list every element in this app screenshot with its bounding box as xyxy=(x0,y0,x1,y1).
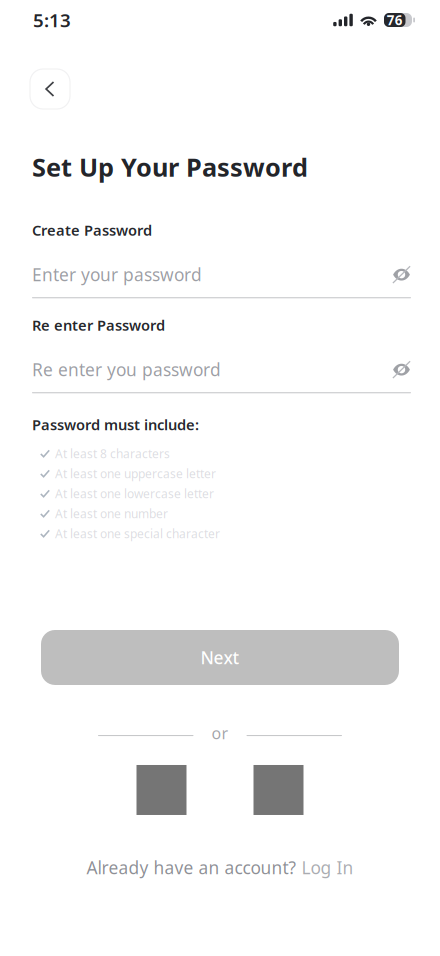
staticText: 5:13 xyxy=(33,8,71,32)
staticText: Next xyxy=(200,646,239,669)
button[interactable]: Continue with Google xyxy=(136,765,186,815)
staticText: or xyxy=(211,722,228,744)
button[interactable]: Next xyxy=(41,630,399,685)
staticText: At least one uppercase letter xyxy=(55,466,216,482)
staticText: Enter your password xyxy=(32,263,202,286)
staticText: Log In xyxy=(301,856,353,879)
button[interactable]: Log In xyxy=(301,856,353,879)
staticText: At least one special character xyxy=(55,526,220,542)
button[interactable]: Back xyxy=(30,69,70,109)
button[interactable]: Show Re enter Password xyxy=(380,354,411,386)
staticText: At least one lowercase letter xyxy=(55,486,214,502)
staticText: Create Password xyxy=(32,220,152,240)
staticText: At least 8 characters xyxy=(55,446,170,462)
button[interactable]: Continue with Apple xyxy=(253,765,303,815)
staticText: Password must include: xyxy=(32,415,199,434)
staticText: Re enter you password xyxy=(32,358,221,381)
staticText: At least one number xyxy=(55,506,168,522)
staticText: Already have an account? xyxy=(86,856,301,879)
staticText: 76 xyxy=(387,11,403,29)
staticText: Set Up Your Password xyxy=(32,150,308,184)
staticText: Re enter Password xyxy=(32,315,165,335)
button[interactable]: Show Create Password xyxy=(380,259,411,291)
